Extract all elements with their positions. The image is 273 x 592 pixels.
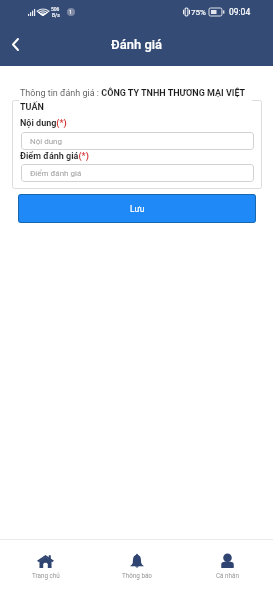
staticText: Điểm đánh giá [30, 169, 82, 178]
staticText: Thông báo [122, 572, 152, 579]
button[interactable]: Back [0, 24, 31, 66]
staticText: Nội dung [30, 137, 63, 146]
staticText: 506 [51, 6, 60, 12]
button[interactable]: Cá nhân [182, 540, 273, 592]
staticText: Đánh giá [111, 37, 163, 52]
button[interactable]: Lưu [18, 194, 256, 223]
button[interactable]: Trang chủ [0, 540, 91, 592]
staticText: 75% [191, 8, 206, 17]
button[interactable]: Điểm đánh giá [21, 164, 254, 182]
staticText: Nội dung(*) [20, 118, 67, 129]
staticText: 09:04 [229, 7, 251, 17]
staticText: 1 [69, 9, 73, 15]
staticText: Thông tin đánh giá : CÔNG TY TNHH THƯƠNG… [20, 88, 253, 112]
staticText: Lưu [130, 204, 145, 214]
button[interactable]: Thông báo [91, 540, 182, 592]
staticText: Trang chủ [32, 572, 60, 579]
staticText: Điểm đánh giá(*) [20, 151, 89, 162]
button[interactable]: Nội dung [21, 132, 254, 150]
staticText: B/s [52, 12, 60, 18]
staticText: Cá nhân [216, 572, 239, 579]
